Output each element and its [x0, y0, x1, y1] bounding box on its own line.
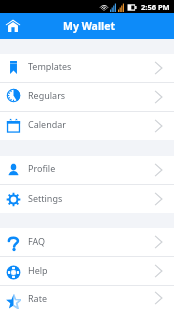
staticText: Profile: [28, 162, 56, 174]
staticText: Help: [28, 264, 48, 276]
button[interactable]: Rate: [0, 286, 174, 310]
button[interactable]: Profile: [0, 156, 174, 184]
button[interactable]: Calendar: [0, 112, 174, 140]
staticText: My Wallet: [63, 19, 115, 33]
staticText: Rate: [28, 292, 47, 304]
staticText: Settings: [28, 192, 63, 204]
button[interactable]: FAQ: [0, 228, 174, 256]
button[interactable]: Settings: [0, 185, 174, 213]
button[interactable]: Regulars: [0, 83, 174, 111]
button[interactable]: Templates: [0, 54, 174, 82]
staticText: FAQ: [28, 235, 46, 247]
button[interactable]: Home: [3, 16, 23, 36]
staticText: Regulars: [28, 89, 66, 101]
staticText: 2:56 PM: [141, 2, 170, 12]
staticText: Calendar: [28, 118, 66, 130]
button[interactable]: Help: [0, 257, 174, 285]
staticText: Templates: [28, 60, 72, 72]
